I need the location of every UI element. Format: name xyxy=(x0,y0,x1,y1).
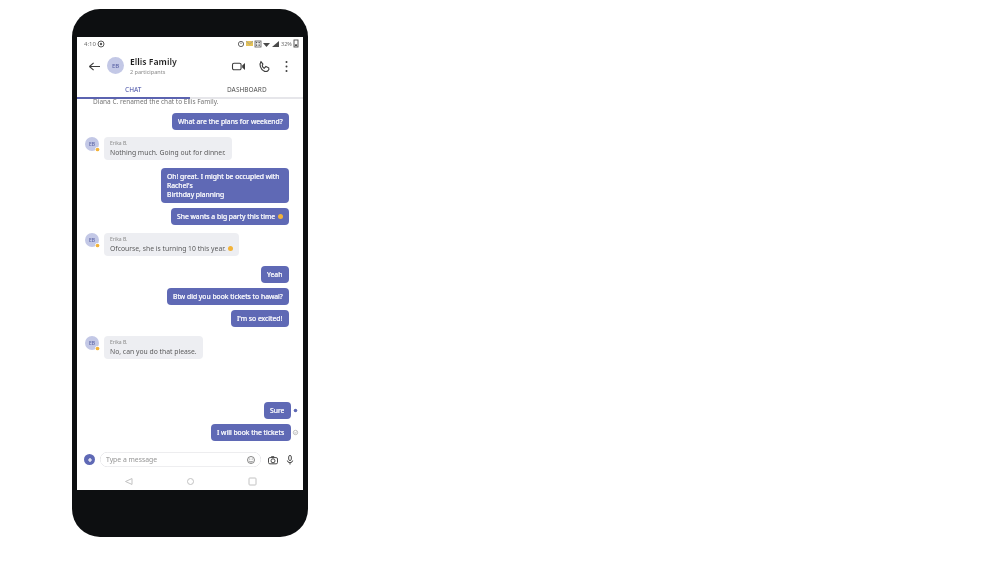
staticText: Nothing much. Going out for dinner. xyxy=(110,148,226,157)
button[interactable]: Erika B. xyxy=(104,233,239,256)
staticText: CHAT xyxy=(125,85,142,94)
staticText: EB xyxy=(89,340,96,347)
staticText: Diana C. renamed the chat to Ellis Famil… xyxy=(93,97,219,106)
staticText: EB xyxy=(89,237,96,244)
button[interactable]: Video call xyxy=(228,56,248,76)
staticText: Type a message xyxy=(106,455,247,464)
staticText: 32% xyxy=(281,40,292,47)
button[interactable]: Back xyxy=(85,57,103,75)
button[interactable]: DASHBOARD xyxy=(190,81,303,97)
staticText: DASHBOARD xyxy=(227,85,267,94)
staticText: 4:10 xyxy=(84,40,96,48)
button[interactable]: Sure xyxy=(264,402,291,419)
button[interactable]: Voice message xyxy=(283,453,296,466)
button[interactable]: Home xyxy=(179,472,201,490)
staticText: Sure xyxy=(270,406,285,415)
button[interactable]: What are the plans for weekend? xyxy=(172,113,289,130)
button[interactable]: Yeah xyxy=(261,266,289,283)
button[interactable]: Btw did you book tickets to hawai? xyxy=(167,288,289,305)
button[interactable]: I will book the tickets xyxy=(211,424,291,441)
staticText: Ofcourse, she is turning 10 this year. xyxy=(110,244,226,253)
staticText: Erika B. xyxy=(110,236,128,243)
button[interactable]: More options xyxy=(277,57,295,75)
staticText: Btw did you book tickets to hawai? xyxy=(173,292,283,301)
button[interactable]: Camera xyxy=(266,453,279,466)
staticText: EB xyxy=(112,62,120,70)
button[interactable]: CHAT xyxy=(77,81,190,97)
staticText: Ellis Family xyxy=(130,56,177,68)
button[interactable]: I'm so excited! xyxy=(231,310,289,327)
staticText: Erika B. xyxy=(110,140,128,147)
button[interactable]: Recent apps xyxy=(241,472,263,490)
button[interactable]: Back xyxy=(117,472,139,490)
button[interactable]: Oh! great. I might be occupied with Rach… xyxy=(161,168,289,203)
button[interactable]: Erika B. xyxy=(104,336,203,359)
button[interactable]: Voice call xyxy=(254,56,274,76)
staticText: No, can you do that please. xyxy=(110,347,197,356)
button[interactable]: Type a message xyxy=(100,452,261,467)
staticText: Erika B. xyxy=(110,339,128,346)
staticText: She wants a big party this time xyxy=(177,212,276,221)
staticText: I will book the tickets xyxy=(217,428,285,437)
staticText: 2 participants xyxy=(130,68,166,75)
button[interactable]: Add attachment xyxy=(84,454,95,465)
button[interactable]: She wants a big party this time xyxy=(171,208,289,225)
staticText: EB xyxy=(89,141,96,148)
staticText: I'm so excited! xyxy=(237,314,283,323)
staticText: Oh! great. I might be occupied with Rach… xyxy=(167,172,283,199)
staticText: What are the plans for weekend? xyxy=(178,117,283,126)
button[interactable]: Erika B. xyxy=(104,137,232,160)
staticText: Yeah xyxy=(267,270,283,279)
